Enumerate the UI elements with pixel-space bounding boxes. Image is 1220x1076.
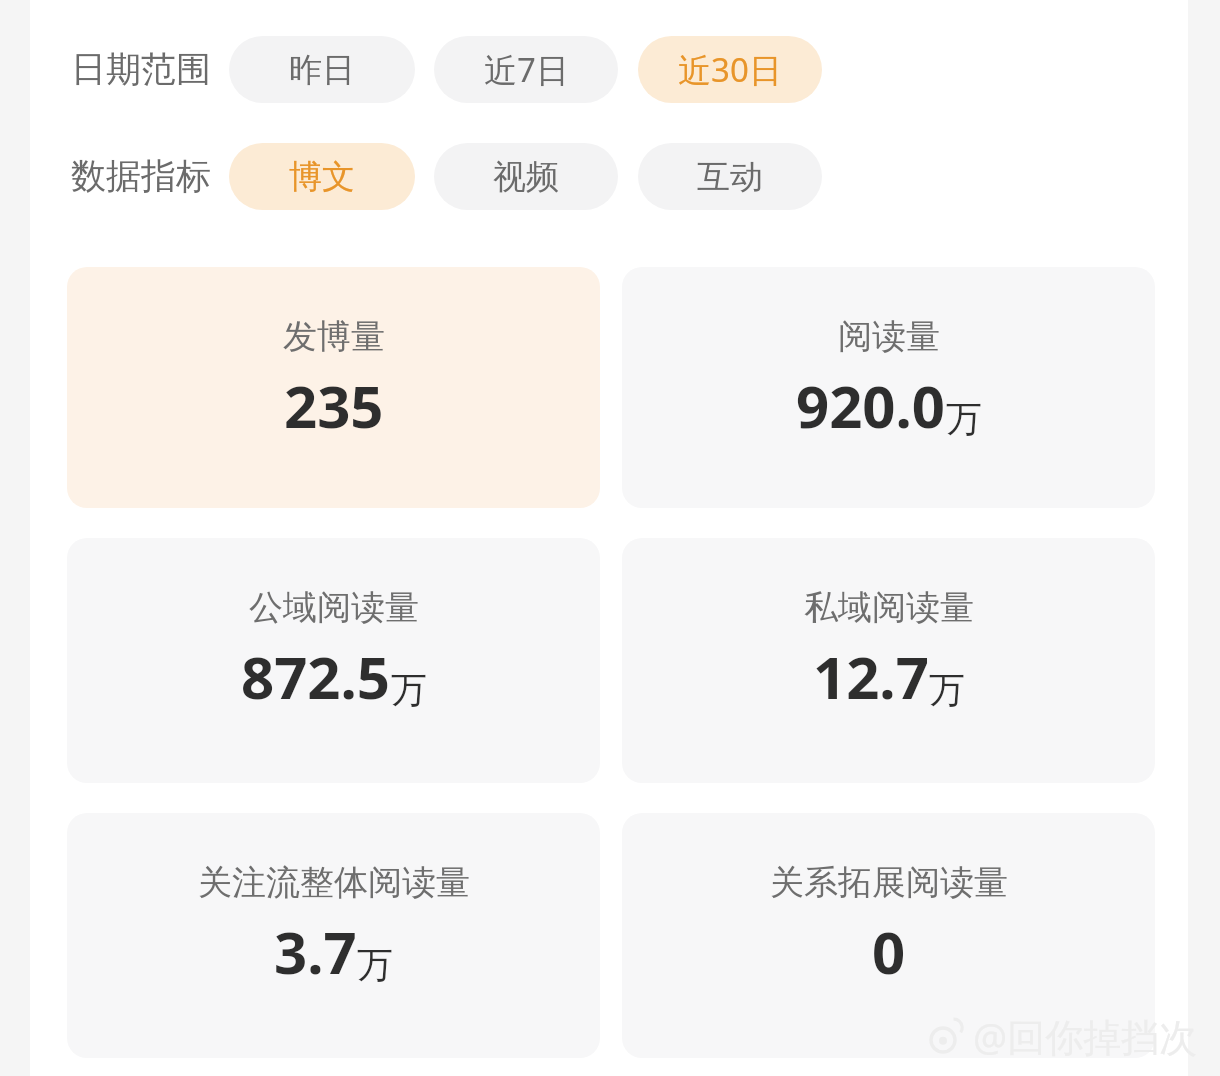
button[interactable]: 博文 xyxy=(229,143,415,210)
button[interactable]: 私域阅读量 xyxy=(622,538,1155,783)
staticText: 920.0 xyxy=(796,366,946,445)
button[interactable]: 公域阅读量 xyxy=(67,538,600,783)
staticText: 视频 xyxy=(493,156,559,198)
staticText: 近30日 xyxy=(678,47,782,92)
staticText: 近7日 xyxy=(484,47,569,92)
other: Weibo watermark xyxy=(927,1010,1198,1062)
button[interactable]: 关系拓展阅读量 xyxy=(622,813,1155,1058)
staticText: 公域阅读量 xyxy=(249,586,419,629)
staticText: 日期范围 xyxy=(71,47,211,91)
button[interactable]: 互动 xyxy=(638,143,822,210)
staticText: 昨日 xyxy=(289,49,355,91)
staticText: 872.5 xyxy=(241,637,391,716)
staticText: 关注流整体阅读量 xyxy=(198,861,470,904)
staticText: 博文 xyxy=(289,156,355,198)
staticText: @回你掉挡次 xyxy=(973,1010,1198,1062)
button[interactable]: 发博量 xyxy=(67,267,600,508)
staticText: 235 xyxy=(284,366,384,445)
staticText: 万 xyxy=(946,396,982,441)
staticText: 万 xyxy=(391,667,427,712)
button[interactable]: 昨日 xyxy=(229,36,415,103)
staticText: 万 xyxy=(929,667,965,712)
button[interactable]: 视频 xyxy=(434,143,618,210)
staticText: 12.7 xyxy=(813,637,929,716)
button[interactable]: 关注流整体阅读量 xyxy=(67,813,600,1058)
button[interactable]: 阅读量 xyxy=(622,267,1155,508)
staticText: 3.7 xyxy=(274,912,357,991)
staticText: 发博量 xyxy=(283,315,385,358)
button[interactable]: 近7日 xyxy=(434,36,618,103)
staticText: 万 xyxy=(357,942,393,987)
staticText: 数据指标 xyxy=(71,154,211,198)
staticText: 阅读量 xyxy=(838,315,940,358)
staticText: 私域阅读量 xyxy=(804,586,974,629)
staticText: 关系拓展阅读量 xyxy=(770,861,1008,904)
staticText: 互动 xyxy=(697,156,763,198)
button[interactable]: 近30日 xyxy=(638,36,822,103)
staticText: 0 xyxy=(872,912,906,991)
